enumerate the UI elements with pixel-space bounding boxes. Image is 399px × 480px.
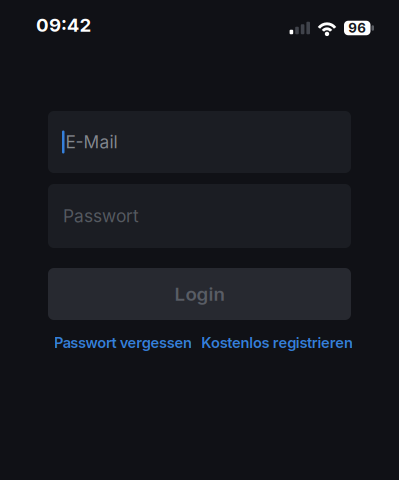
button[interactable]: Kostenlos registrieren: [201, 334, 353, 351]
button[interactable]: Passwort: [48, 184, 351, 248]
staticText: Login: [174, 283, 224, 305]
staticText: E-Mail: [65, 132, 117, 152]
button[interactable]: Passwort vergessen: [54, 334, 192, 351]
staticText: 96: [348, 20, 366, 36]
staticText: 09:42: [36, 14, 92, 36]
staticText: Passwort vergessen: [54, 334, 192, 351]
staticText: Kostenlos registrieren: [201, 334, 353, 351]
button[interactable]: Login: [48, 268, 351, 320]
button[interactable]: E-Mail: [48, 111, 351, 173]
staticText: Passwort: [63, 206, 139, 226]
